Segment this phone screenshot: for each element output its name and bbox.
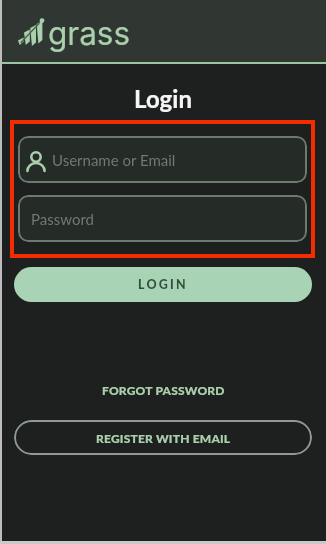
staticText: Password <box>31 210 94 228</box>
button[interactable]: LOGIN <box>14 267 312 302</box>
staticText: LOGIN <box>138 277 188 292</box>
staticText: Login <box>0 84 326 113</box>
staticText: REGISTER WITH EMAIL <box>96 431 231 445</box>
staticText: FORGOT PASSWORD <box>102 383 225 397</box>
staticText: Username or Email <box>52 151 176 169</box>
button[interactable]: REGISTER WITH EMAIL <box>14 420 312 455</box>
button[interactable]: Username or Email <box>18 136 307 183</box>
button[interactable]: FORGOT PASSWORD <box>0 383 326 397</box>
button[interactable]: Password <box>18 195 307 242</box>
staticText: grass <box>48 14 131 52</box>
